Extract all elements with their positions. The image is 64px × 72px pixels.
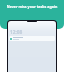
staticText: Never miss your tasks again [2, 4, 62, 9]
staticText: 12:08 [10, 29, 23, 36]
button[interactable] [9, 36, 55, 41]
